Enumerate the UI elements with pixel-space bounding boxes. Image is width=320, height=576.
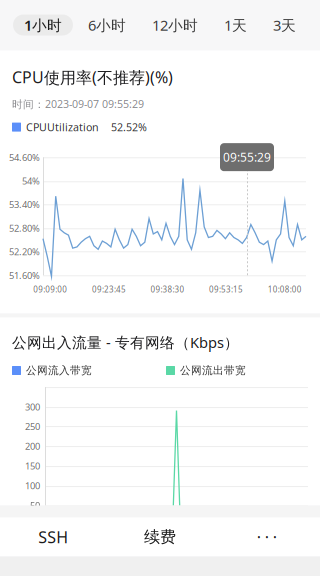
staticText: 09:53:15 (209, 284, 243, 295)
button[interactable]: 6小时 (77, 14, 137, 35)
staticText: 09:09:00 (33, 284, 67, 295)
staticText: 3天 (273, 15, 296, 35)
staticText: 300 (25, 401, 40, 413)
staticText: 53.40% (9, 198, 40, 211)
staticText: CPU使用率(不推荐)(%) (12, 66, 173, 88)
button[interactable]: 1小时 (13, 14, 73, 35)
staticText: CPUUtilization (26, 120, 99, 134)
button[interactable]: 12小时 (141, 14, 209, 35)
staticText: 6小时 (88, 15, 126, 35)
button[interactable]: 续费 (107, 517, 213, 556)
staticText: 54% (22, 175, 40, 187)
staticText: 51.60% (9, 269, 40, 281)
staticText: 公网流出带宽 (180, 364, 246, 377)
staticText: 公网流入带宽 (26, 364, 92, 377)
staticText: 52.20% (9, 245, 40, 258)
staticText: 200 (25, 440, 40, 452)
staticText: 100 (25, 479, 40, 492)
staticText: 250 (25, 420, 40, 433)
staticText: 1小时 (24, 15, 62, 35)
staticText: 150 (25, 460, 40, 472)
staticText: 52.80% (9, 222, 40, 234)
staticText: 公网出入流量 - 专有网络（Kbps） (12, 332, 239, 352)
staticText: 1天 (224, 15, 247, 35)
staticText: · · · (257, 526, 277, 548)
staticText: 09:55:29 (223, 149, 271, 165)
staticText: 10:08:00 (268, 284, 302, 295)
staticText: 54.60% (9, 151, 40, 163)
staticText: 09:23:45 (92, 284, 126, 295)
staticText: 时间：2023-09-07 09:55:29 (12, 97, 144, 111)
staticText: 09:38:30 (150, 284, 184, 295)
staticText: SSH (38, 526, 68, 548)
staticText: 52.52% (111, 120, 147, 134)
staticText: 续费 (144, 527, 176, 547)
button[interactable]: 1天 (213, 14, 258, 35)
button[interactable]: More actions (213, 517, 320, 556)
button[interactable]: 3天 (262, 14, 307, 35)
staticText: 50 (30, 499, 40, 511)
button[interactable]: SSH (0, 517, 107, 556)
staticText: 12小时 (152, 15, 198, 35)
